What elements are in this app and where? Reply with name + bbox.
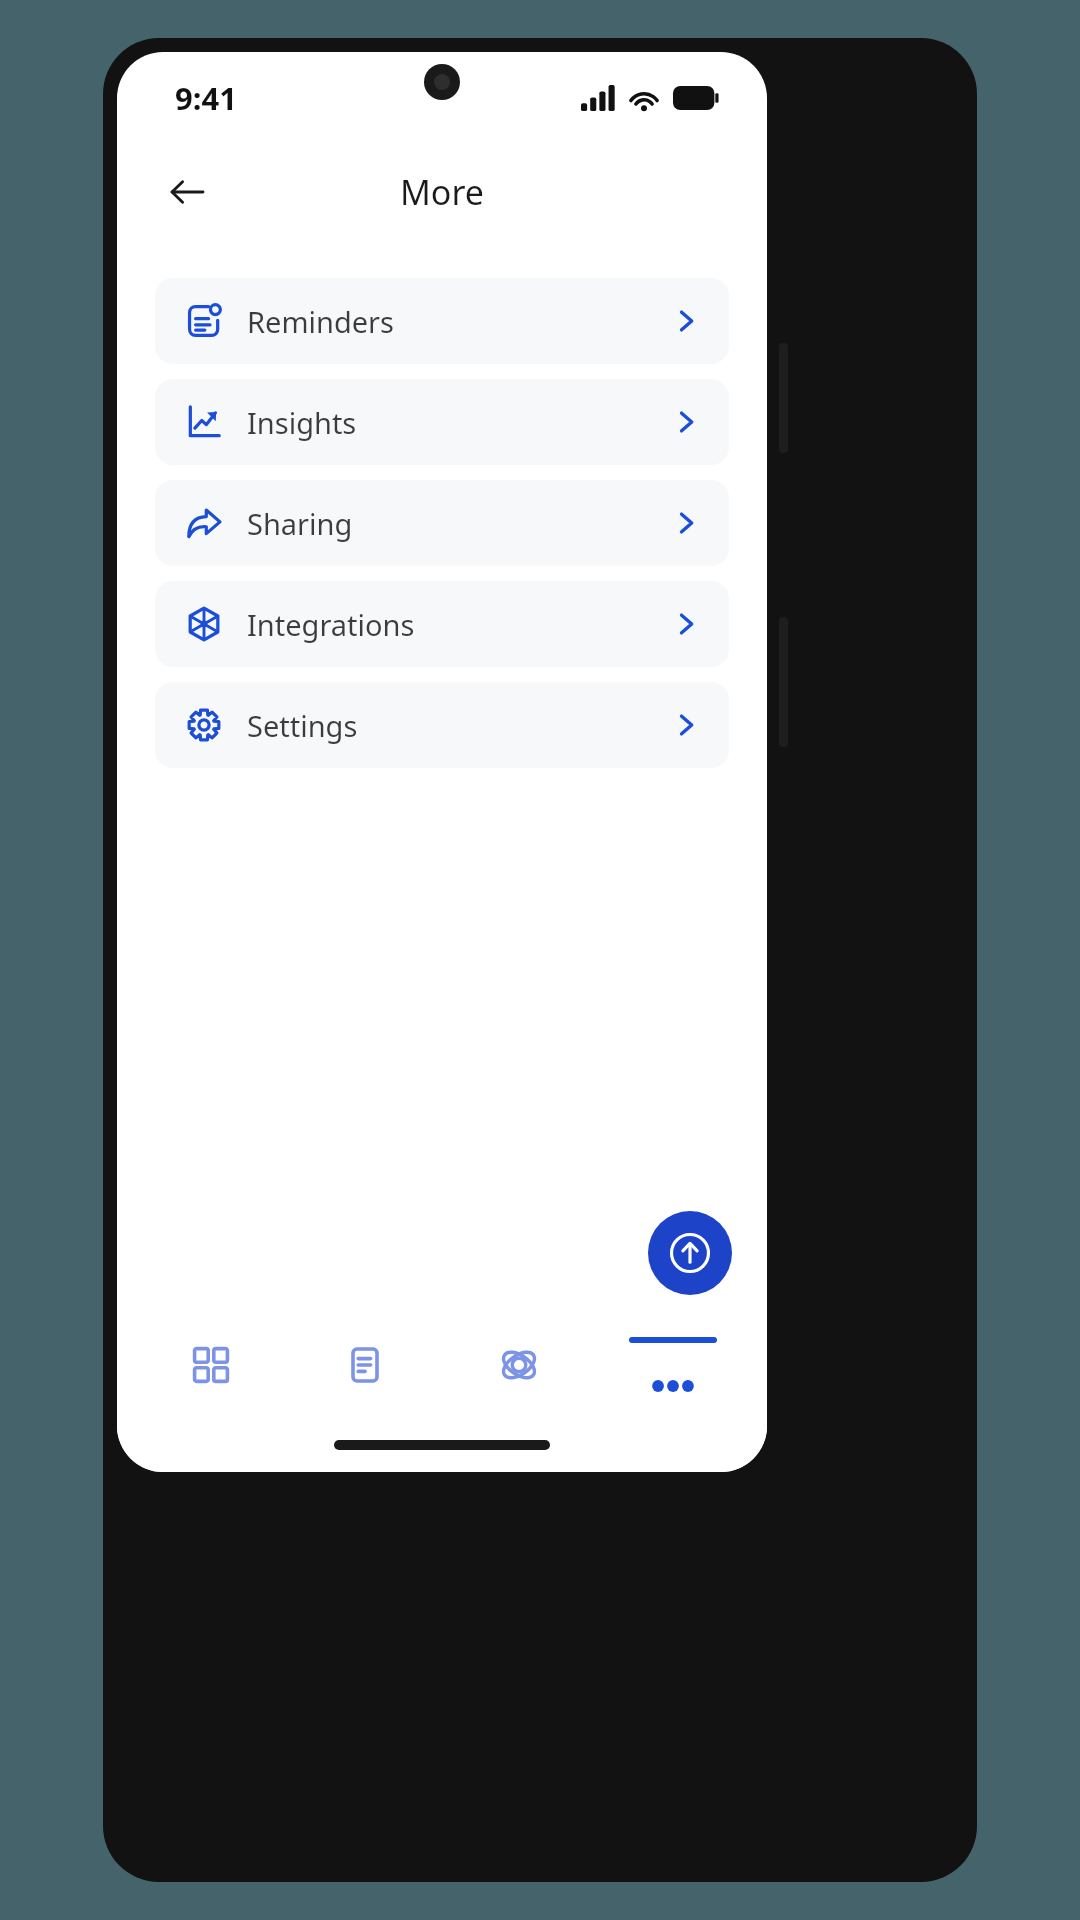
button[interactable]: Sharing xyxy=(155,480,729,566)
button[interactable]: Integrations xyxy=(155,581,729,667)
button[interactable]: More xyxy=(613,1322,733,1408)
button[interactable]: Reminders xyxy=(155,278,729,364)
staticText: Insights xyxy=(247,403,357,442)
staticText: Reminders xyxy=(247,302,394,341)
button[interactable]: Dashboard xyxy=(151,1322,271,1408)
staticText: Integrations xyxy=(247,605,415,644)
button[interactable]: Settings xyxy=(155,682,729,768)
button[interactable]: Scroll to top xyxy=(648,1211,732,1295)
staticText: More xyxy=(400,169,484,215)
button[interactable]: Back xyxy=(157,162,217,222)
staticText: 9:41 xyxy=(175,77,237,119)
button[interactable]: Insights xyxy=(155,379,729,465)
staticText: Settings xyxy=(247,706,358,745)
button[interactable]: Documents xyxy=(305,1322,425,1408)
staticText: Sharing xyxy=(247,504,353,543)
button[interactable]: Activity xyxy=(459,1322,579,1408)
